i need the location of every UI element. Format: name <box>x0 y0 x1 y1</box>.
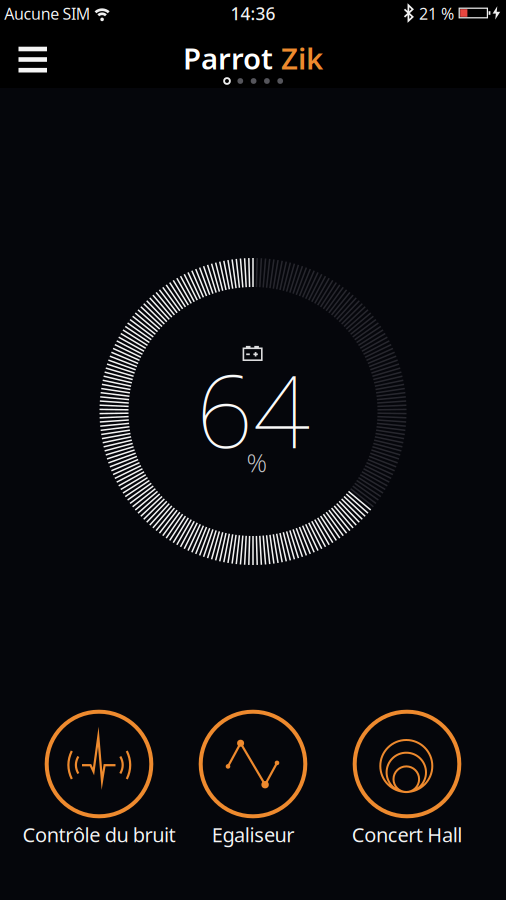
button[interactable]: Egaliseur <box>168 710 338 850</box>
button[interactable]: Concert Hall <box>322 710 492 850</box>
staticText: Zik <box>281 38 323 77</box>
staticText: Concert Hall <box>352 821 462 848</box>
staticText: 14:36 <box>230 2 275 25</box>
staticText: % <box>246 446 267 479</box>
staticText: Contrôle du bruit <box>22 821 176 848</box>
staticText: 21 % <box>419 3 454 24</box>
staticText: Aucune SIM <box>4 3 91 24</box>
staticText: 64 <box>196 343 310 475</box>
staticText: Parrot <box>183 38 281 77</box>
button[interactable]: Menu <box>18 47 47 72</box>
staticText: Egaliseur <box>212 821 294 848</box>
button[interactable]: Contrôle du bruit <box>14 710 184 850</box>
